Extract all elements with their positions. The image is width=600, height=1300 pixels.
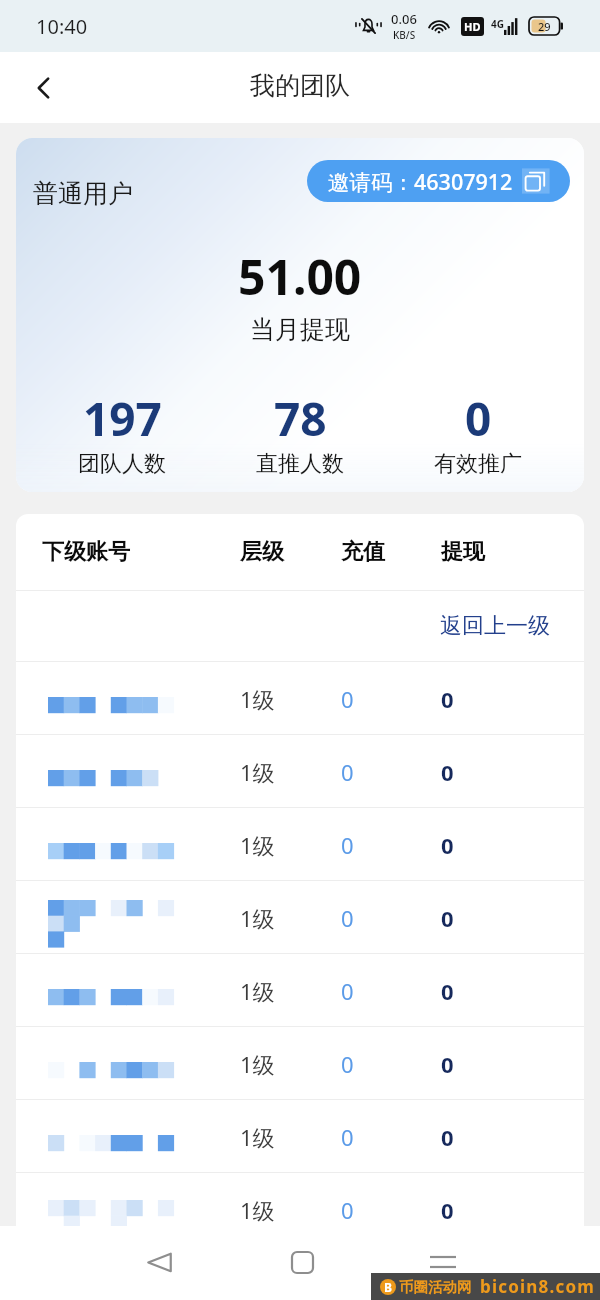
button[interactable]: 邀请码：46307912 (307, 160, 570, 202)
staticText: 1级 (240, 684, 275, 714)
button[interactable]: 1级 (16, 1173, 584, 1245)
staticText: 当月提现 (250, 314, 350, 345)
button[interactable]: Back (18, 62, 70, 114)
staticText: 0 (341, 830, 354, 860)
staticText: 197 (83, 387, 162, 450)
staticText: 0 (441, 1049, 454, 1079)
staticText: 0 (441, 830, 454, 860)
staticText: HD (464, 19, 481, 34)
staticText: 10:40 (36, 13, 88, 40)
staticText: 0 (341, 1049, 354, 1079)
staticText: 0 (341, 976, 354, 1006)
button[interactable]: 1级 (16, 735, 584, 807)
button[interactable]: Home (276, 1236, 328, 1288)
staticText: 0 (441, 684, 454, 714)
button[interactable]: 1级 (16, 808, 584, 880)
staticText: 层级 (240, 538, 284, 566)
staticText: 0.06 (391, 10, 417, 28)
staticText: 0 (441, 976, 454, 1006)
button[interactable]: 1级 (16, 1027, 584, 1099)
staticText: 0 (341, 1122, 354, 1152)
staticText: 0 (341, 684, 354, 714)
staticText: 1级 (240, 976, 275, 1006)
staticText: 1级 (240, 1195, 275, 1225)
button[interactable]: 1级 (16, 1100, 584, 1172)
staticText: 0 (441, 1122, 454, 1152)
staticText: B (384, 1279, 392, 1295)
button[interactable]: Back (133, 1236, 185, 1288)
staticText: 币圈活动网 (399, 1278, 472, 1296)
staticText: 0 (341, 757, 354, 787)
button[interactable]: 1级 (16, 662, 584, 734)
staticText: 邀请码：46307912 (328, 167, 513, 196)
staticText: 提现 (441, 538, 485, 566)
button[interactable]: 197 (33, 387, 211, 478)
staticText: 1级 (240, 903, 275, 933)
staticText: 51.00 (238, 244, 362, 309)
staticText: 直推人数 (256, 450, 344, 478)
staticText: 0 (465, 387, 492, 450)
staticText: 0 (441, 757, 454, 787)
staticText: KB/S (393, 28, 416, 42)
button[interactable]: 1级 (16, 954, 584, 1026)
staticText: 0 (341, 903, 354, 933)
staticText: 下级账号 (42, 538, 130, 566)
staticText: 0 (441, 1195, 454, 1225)
staticText: 78 (274, 387, 327, 450)
button[interactable]: 1级 (16, 881, 584, 953)
staticText: 1级 (240, 830, 275, 860)
staticText: 团队人数 (78, 450, 166, 478)
staticText: 1级 (240, 757, 275, 787)
staticText: 1级 (240, 1049, 275, 1079)
staticText: bicoin8.com (480, 1275, 596, 1298)
staticText: 有效推广 (434, 450, 522, 478)
staticText: 4G (491, 17, 504, 31)
staticText: 充值 (341, 538, 385, 566)
staticText: 1级 (240, 1122, 275, 1152)
staticText: 29 (538, 19, 551, 34)
button[interactable]: Recent apps (417, 1236, 469, 1288)
staticText: 0 (341, 1195, 354, 1225)
staticText: 0 (441, 903, 454, 933)
staticText: 我的团队 (250, 70, 350, 101)
staticText: 普通用户 (33, 178, 133, 209)
button[interactable]: 78 (211, 387, 389, 478)
button[interactable]: 0 (389, 387, 567, 478)
button[interactable]: 返回上一级 (440, 612, 584, 640)
